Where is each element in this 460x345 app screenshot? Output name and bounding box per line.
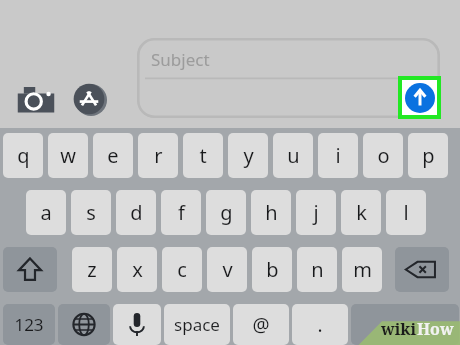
- button[interactable]: o: [363, 133, 403, 178]
- button[interactable]: 123: [3, 304, 55, 345]
- button[interactable]: u: [273, 133, 313, 178]
- staticText: How: [417, 318, 454, 340]
- button[interactable]: f: [161, 190, 201, 235]
- button[interactable]: Subject: [137, 38, 440, 118]
- button[interactable]: d: [116, 190, 156, 235]
- button[interactable]: Shift: [3, 247, 57, 292]
- staticText: f: [178, 199, 185, 226]
- button[interactable]: i: [318, 133, 358, 178]
- staticText: e: [107, 142, 119, 169]
- button[interactable]: space: [164, 304, 230, 345]
- button[interactable]: @: [233, 304, 289, 345]
- staticText: c: [177, 256, 187, 283]
- staticText: Subject: [151, 48, 210, 71]
- staticText: .: [317, 312, 323, 338]
- button[interactable]: Send: [398, 76, 441, 119]
- button[interactable]: b: [252, 247, 292, 292]
- staticText: r: [154, 142, 163, 169]
- staticText: k: [356, 199, 367, 226]
- staticText: i: [335, 142, 341, 169]
- button[interactable]: y: [228, 133, 268, 178]
- staticText: m: [353, 256, 372, 283]
- staticText: space: [174, 313, 220, 336]
- staticText: @: [252, 312, 270, 338]
- staticText: g: [220, 199, 233, 226]
- button[interactable]: r: [138, 133, 178, 178]
- button[interactable]: k: [341, 190, 381, 235]
- button[interactable]: e: [93, 133, 133, 178]
- button[interactable]: c: [162, 247, 202, 292]
- button[interactable]: m: [342, 247, 382, 292]
- staticText: v: [222, 256, 233, 283]
- button[interactable]: .: [292, 304, 348, 345]
- button[interactable]: g: [206, 190, 246, 235]
- button[interactable]: Camera: [16, 82, 56, 116]
- staticText: l: [403, 199, 409, 226]
- staticText: w: [60, 142, 76, 169]
- staticText: s: [86, 199, 96, 226]
- button[interactable]: Change keyboard: [58, 304, 110, 345]
- button[interactable]: Dictate: [113, 304, 161, 345]
- staticText: o: [377, 142, 390, 169]
- button[interactable]: Return: [351, 304, 459, 345]
- button[interactable]: q: [3, 133, 43, 178]
- staticText: b: [266, 256, 279, 283]
- staticText: x: [132, 256, 143, 283]
- button[interactable]: x: [117, 247, 157, 292]
- button[interactable]: v: [207, 247, 247, 292]
- button[interactable]: j: [296, 190, 336, 235]
- button[interactable]: h: [251, 190, 291, 235]
- staticText: j: [313, 199, 319, 226]
- staticText: p: [422, 142, 435, 169]
- button[interactable]: n: [297, 247, 337, 292]
- button[interactable]: z: [72, 247, 112, 292]
- button[interactable]: l: [386, 190, 426, 235]
- staticText: y: [243, 142, 254, 169]
- button[interactable]: App Store: [72, 82, 106, 116]
- staticText: d: [130, 199, 143, 226]
- staticText: 123: [14, 313, 44, 336]
- button[interactable]: t: [183, 133, 223, 178]
- staticText: u: [287, 142, 300, 169]
- button[interactable]: s: [71, 190, 111, 235]
- button[interactable]: w: [48, 133, 88, 178]
- button[interactable]: p: [408, 133, 448, 178]
- staticText: n: [311, 256, 324, 283]
- staticText: a: [40, 199, 52, 226]
- staticText: z: [87, 256, 97, 283]
- button[interactable]: a: [26, 190, 66, 235]
- staticText: wiki: [381, 318, 417, 340]
- staticText: t: [199, 142, 207, 169]
- staticText: q: [17, 142, 30, 169]
- staticText: h: [265, 199, 278, 226]
- button[interactable]: Backspace: [395, 247, 449, 292]
